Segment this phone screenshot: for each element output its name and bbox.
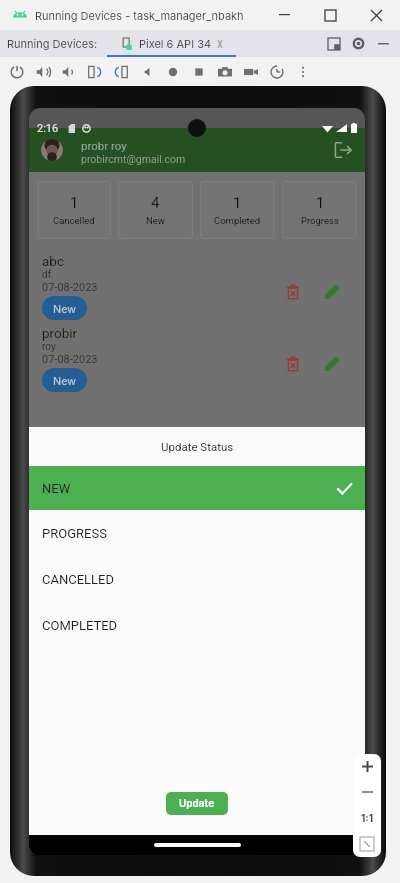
staticText: 1 xyxy=(233,194,242,212)
button[interactable]: Record xyxy=(238,58,264,86)
button[interactable]: Rotate left xyxy=(82,58,108,86)
button[interactable]: PROGRESS xyxy=(29,510,365,556)
button[interactable]: CANCELLED xyxy=(29,556,365,602)
staticText: Completed xyxy=(214,215,261,226)
button[interactable]: Fit to screen xyxy=(353,831,381,857)
button[interactable]: New xyxy=(42,368,87,392)
button[interactable]: Edit xyxy=(319,278,345,304)
staticText: 4 xyxy=(151,194,160,212)
staticText: probr roy xyxy=(81,139,127,152)
button[interactable]: Volume up xyxy=(30,58,56,86)
button[interactable]: Zoom in xyxy=(353,754,381,779)
staticText: probir xyxy=(42,325,78,341)
staticText: Running Devices - task_manager_nbakh xyxy=(35,9,244,22)
staticText: Pixel 6 API 34 xyxy=(139,37,212,50)
staticText: Update Status xyxy=(161,440,234,453)
staticText: New xyxy=(53,302,76,315)
staticText: PROGRESS xyxy=(42,526,107,541)
staticText: 07-08-2023 xyxy=(42,353,98,366)
staticText: abc xyxy=(42,253,64,269)
button[interactable]: History xyxy=(264,58,290,86)
staticText: NEW xyxy=(42,481,71,496)
button[interactable]: Hide xyxy=(371,30,396,57)
staticText: Cancelled xyxy=(53,215,95,226)
button[interactable]: Rotate right xyxy=(108,58,134,86)
staticText: Update xyxy=(179,797,215,810)
button[interactable]: Pixel 6 API 34 xyxy=(107,30,236,57)
button[interactable]: abc xyxy=(29,248,365,320)
staticText: 07-08-2023 xyxy=(42,281,98,294)
button[interactable]: 1 xyxy=(37,181,111,239)
button[interactable]: Delete xyxy=(280,350,306,376)
button[interactable]: Update xyxy=(166,792,228,815)
staticText: New xyxy=(53,374,76,387)
button[interactable]: Edit xyxy=(319,350,345,376)
button[interactable]: Settings xyxy=(346,30,371,57)
button[interactable]: Window options xyxy=(321,30,346,57)
button[interactable]: Back xyxy=(134,58,160,86)
button[interactable]: NEW xyxy=(29,466,365,510)
button[interactable]: Overview xyxy=(186,58,212,86)
staticText: roy xyxy=(42,341,56,353)
staticText: COMPLETED xyxy=(42,618,118,633)
staticText: 2:16 xyxy=(37,122,59,135)
button[interactable]: Maximize xyxy=(307,0,353,30)
button[interactable]: 1 xyxy=(200,181,275,239)
button[interactable]: Close xyxy=(353,0,400,30)
button[interactable]: Zoom out xyxy=(353,779,381,805)
button[interactable]: New xyxy=(42,296,87,320)
button[interactable]: 4 xyxy=(118,181,193,239)
staticText: df xyxy=(42,269,52,281)
button[interactable]: Delete xyxy=(280,278,306,304)
staticText: 1 xyxy=(316,194,325,212)
button[interactable]: Home xyxy=(160,58,186,86)
button[interactable]: Volume down xyxy=(56,58,82,86)
button[interactable]: Screenshot xyxy=(212,58,238,86)
staticText: 1 xyxy=(70,194,79,212)
button[interactable]: COMPLETED xyxy=(29,602,365,648)
button[interactable]: Power xyxy=(4,58,30,86)
button[interactable]: Logout xyxy=(331,138,355,162)
staticText: CANCELLED xyxy=(42,572,114,587)
staticText: Running Devices: xyxy=(7,37,98,50)
staticText: Progress xyxy=(301,215,339,226)
staticText: 1:1 xyxy=(361,812,373,824)
button[interactable]: Minimize xyxy=(261,0,307,30)
button[interactable]: Actual size xyxy=(353,805,381,831)
button[interactable]: More xyxy=(290,58,316,86)
button[interactable]: 1 xyxy=(282,181,357,239)
staticText: probircmt@gmail.com xyxy=(81,153,186,165)
button[interactable]: probir xyxy=(29,320,365,392)
staticText: New xyxy=(146,215,165,226)
